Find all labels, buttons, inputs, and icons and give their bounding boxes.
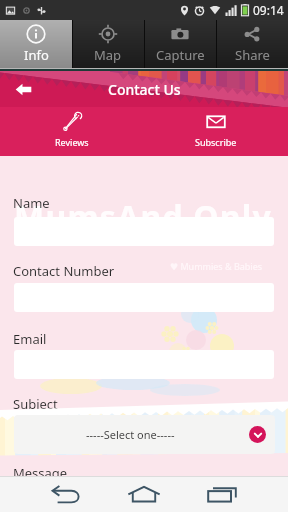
staticText: Contact Us xyxy=(108,80,181,99)
staticText: -----Select one----- xyxy=(86,427,175,442)
staticText: Info xyxy=(24,46,49,64)
staticText: Capture xyxy=(156,46,205,64)
staticText: Share xyxy=(235,46,270,64)
button[interactable]: Reviews xyxy=(0,107,144,156)
button[interactable]: Share xyxy=(216,20,288,68)
staticText: 09:14 xyxy=(253,2,284,18)
staticText: ♥ Mummies & Babies xyxy=(170,260,263,272)
staticText: Message xyxy=(13,464,68,482)
staticText: Reviews xyxy=(55,136,89,148)
button[interactable]: Home xyxy=(116,476,172,512)
button[interactable]: Subscribe xyxy=(144,107,288,156)
staticText: MumsAnd Only xyxy=(14,195,273,239)
staticText: Subject xyxy=(13,395,58,413)
staticText: Subscribe xyxy=(195,136,237,148)
staticText: Contact Number xyxy=(13,262,115,280)
staticText: Map xyxy=(94,46,122,64)
staticText: Name xyxy=(13,194,50,212)
button[interactable]: Capture xyxy=(144,20,216,68)
button[interactable]: Map xyxy=(72,20,144,68)
staticText: Email xyxy=(13,330,47,348)
button[interactable]: Info xyxy=(0,20,72,68)
button[interactable]: Back xyxy=(8,74,38,104)
button[interactable]: Back xyxy=(38,476,94,512)
other: Open dropdown xyxy=(249,426,266,443)
button[interactable]: -----Select one----- xyxy=(14,415,275,454)
button[interactable]: Recent apps xyxy=(194,476,250,512)
